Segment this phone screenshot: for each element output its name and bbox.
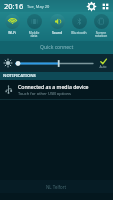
button[interactable]: Edit quick settings [101,2,110,11]
other: Brightness [4,59,12,67]
button[interactable]: Settings [87,2,96,11]
button[interactable] [15,59,93,68]
staticText: Tue, May 20 [27,4,50,9]
staticText: Auto [97,65,109,69]
staticText: Touch for other USB options [18,91,71,96]
staticText: Screen rotation [91,30,111,38]
staticText: Wi-Fi [2,30,22,34]
button[interactable]: Wi-Fi [2,14,22,34]
staticText: Mobile data [24,30,44,38]
staticText: Bluetooth [69,30,89,34]
button[interactable]: Screen rotation [91,14,111,38]
button[interactable]: Sound [47,14,67,34]
staticText: Sound [47,30,67,34]
button[interactable]: Mobile data [24,14,44,38]
staticText: NL Telfort [46,184,67,190]
staticText: NOTIFICATIONS [3,73,36,79]
staticText: Connected as a media device [18,83,89,90]
staticText: Quick connect [40,44,74,51]
button[interactable]: Quick connect [0,41,113,54]
button[interactable]: Connected as a media device [0,80,113,99]
button[interactable]: Bluetooth [69,14,89,34]
button[interactable]: Auto [97,58,109,69]
staticText: 20:16 [4,1,24,11]
